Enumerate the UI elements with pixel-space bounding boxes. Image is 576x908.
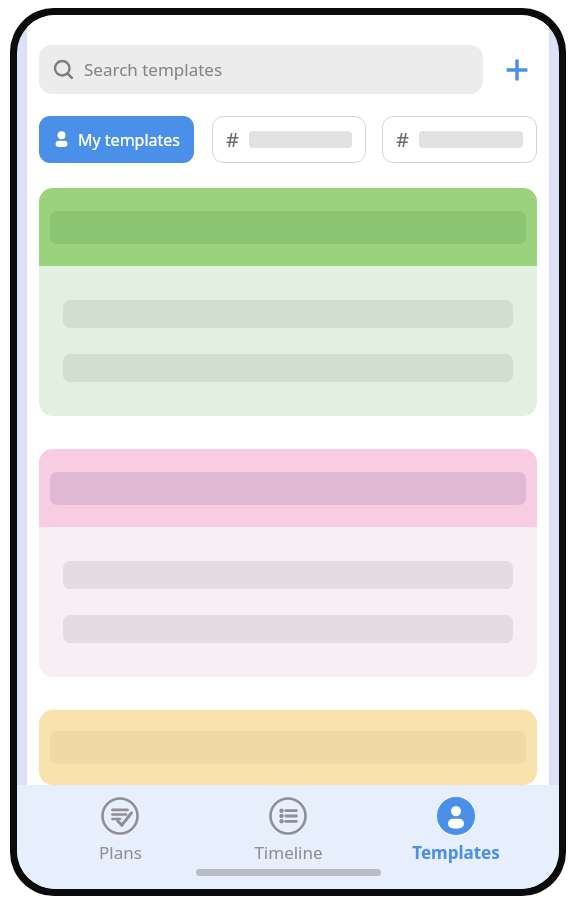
staticText: # — [396, 126, 409, 153]
button[interactable]: My templates — [39, 116, 194, 163]
staticText: My templates — [78, 129, 181, 151]
staticText: Search templates — [84, 58, 223, 81]
button[interactable]: Timeline — [223, 793, 353, 868]
button[interactable]: Add template — [497, 50, 537, 90]
button[interactable]: Search templates — [39, 45, 483, 94]
button[interactable] — [39, 710, 537, 785]
button[interactable]: Plans — [55, 793, 185, 868]
staticText: Plans — [99, 841, 142, 864]
staticText: Templates — [412, 841, 500, 864]
staticText: # — [226, 126, 239, 153]
button[interactable] — [39, 188, 537, 416]
button[interactable] — [39, 449, 537, 677]
button[interactable]: Templates — [391, 793, 521, 868]
staticText: Timeline — [254, 841, 323, 864]
button[interactable]: # — [212, 116, 366, 163]
button[interactable]: # — [382, 116, 537, 163]
